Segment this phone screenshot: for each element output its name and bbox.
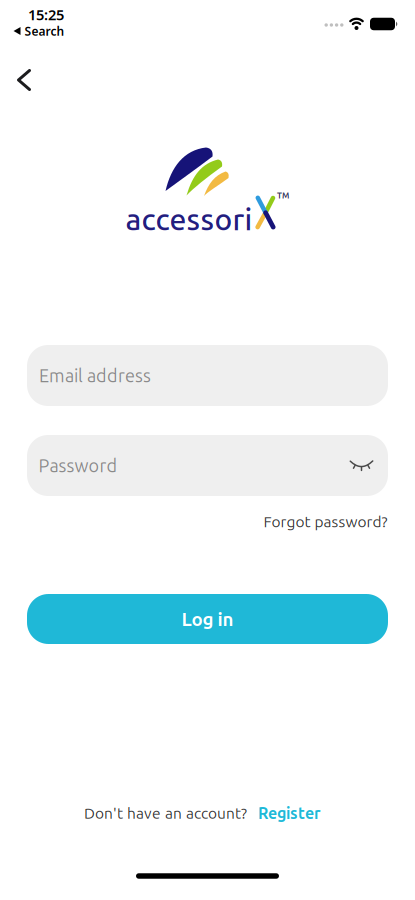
button[interactable]: Register (258, 804, 321, 822)
staticText: Email address (39, 365, 151, 386)
staticText: TM (277, 191, 289, 200)
staticText: Don't have an account? (84, 804, 247, 822)
staticText: Password (38, 455, 117, 476)
staticText: Forgot password? (263, 513, 387, 530)
staticText: Search (24, 23, 64, 39)
button[interactable]: Password (27, 435, 388, 496)
button[interactable]: Back (7, 59, 41, 101)
staticText: Register (258, 804, 321, 822)
button[interactable]: Forgot password? (263, 513, 387, 530)
staticText: accessori (125, 202, 252, 236)
button[interactable]: Show password (339, 450, 383, 483)
staticText: Log in (181, 608, 233, 629)
staticText: 15:25 (28, 5, 64, 24)
button[interactable]: Log in (27, 594, 388, 644)
button[interactable]: Email address (27, 345, 388, 406)
